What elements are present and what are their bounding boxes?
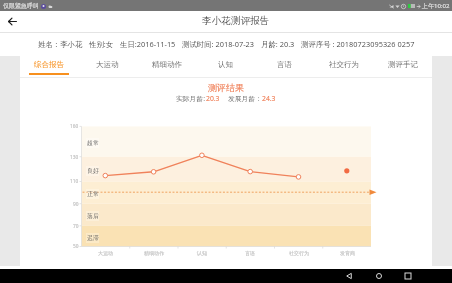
button[interactable]: 测评手记 [373,56,432,77]
staticText: 上午10:02 [422,2,450,10]
staticText: 70 [73,223,79,230]
staticText: 精细动作 [144,250,164,256]
button[interactable]: Back [4,13,20,29]
staticText: 大运动 [98,250,113,256]
staticText: 90 [73,201,79,208]
staticText: 姓名：李小花 [38,40,83,49]
staticText: 认知 [218,60,233,69]
button[interactable]: 大运动 [78,56,137,77]
staticText: 发展月龄： [228,94,262,103]
staticText: 李小花测评报告 [202,15,270,27]
staticText: 言语 [245,250,255,256]
staticText: 性别:女 [89,39,114,49]
button[interactable]: 综合报告 [20,56,78,77]
staticText: 大运动 [96,60,119,69]
staticText: 测评序号 : 20180723095326 0257 [301,39,415,49]
staticText: 仅限紧急呼叫 [3,2,39,10]
staticText: 良好 [87,167,99,175]
staticText: 测评手记 [388,60,418,69]
staticText: 测试时间: 2018-07-23 [182,39,255,49]
staticText: 50 [73,243,79,250]
staticText: 社交行为 [329,60,359,69]
staticText: 超常 [87,139,99,147]
staticText: 正常 [87,190,99,198]
staticText: 24.3 [262,94,276,103]
button[interactable]: 认知 [196,56,255,77]
staticText: 20.3 [206,94,220,103]
staticText: 实际月龄: [176,94,206,103]
staticText: 社交行为 [289,250,309,256]
staticText: 110 [70,178,79,185]
button[interactable]: 言语 [255,56,314,77]
staticText: 落后 [87,212,99,220]
staticText: 精细动作 [152,60,182,69]
button[interactable]: 社交行为 [314,56,373,77]
staticText: 月龄: 20.3 [261,39,295,49]
staticText: 综合报告 [34,60,64,69]
button[interactable]: Recent apps [400,269,416,283]
button[interactable]: 精细动作 [137,56,196,77]
staticText: 测评结果 [20,82,432,94]
staticText: 言语 [277,60,292,69]
staticText: 130 [70,154,79,161]
staticText: 发育商 [340,250,355,256]
button[interactable]: Back [341,269,357,283]
staticText: 160 [70,123,79,130]
staticText: 生日:2016-11-15 [120,39,176,49]
staticText: 认知 [197,250,207,256]
button[interactable]: Home [371,269,387,283]
staticText: 迟滞 [87,234,99,242]
